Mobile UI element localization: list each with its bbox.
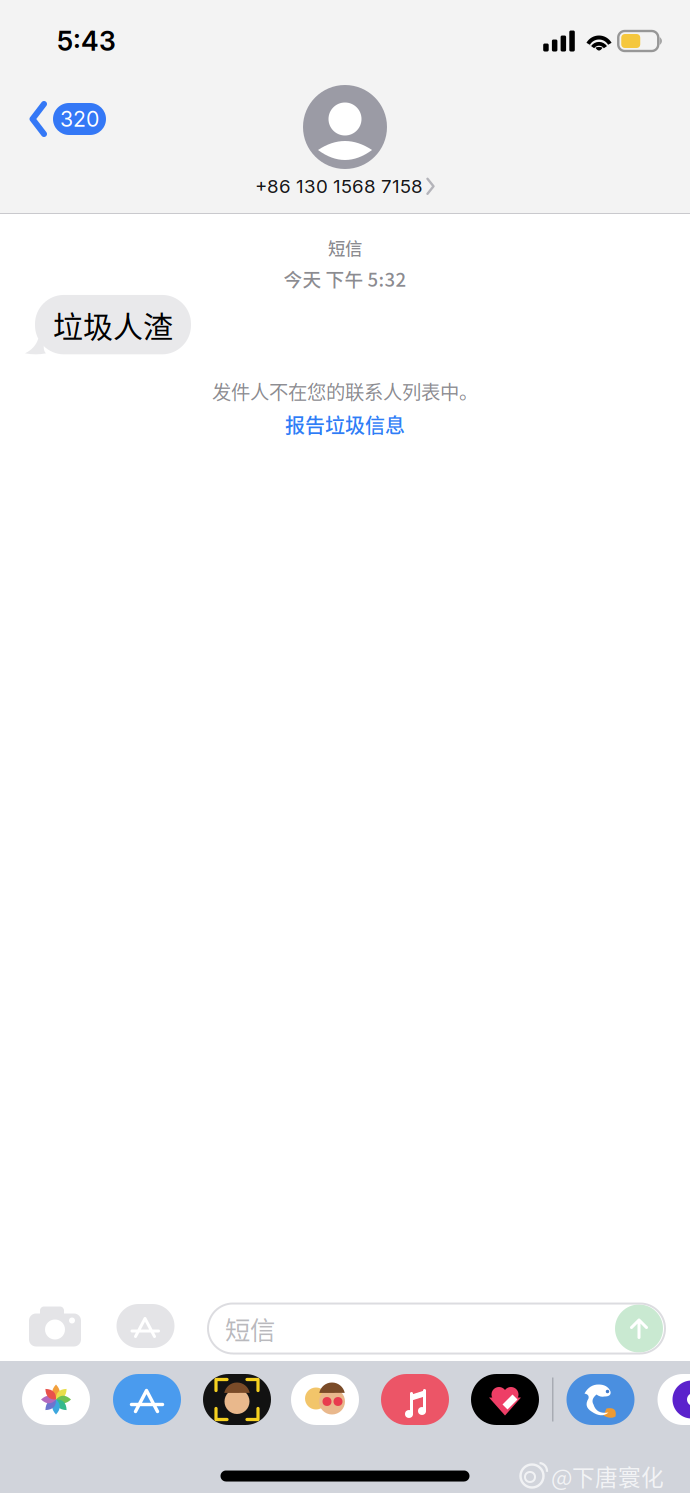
staticText: 报告垃圾信息 (285, 410, 405, 439)
staticText: 短信 (328, 235, 362, 260)
button[interactable]: Memoji (203, 1374, 271, 1425)
button[interactable]: Dolphin app (566, 1374, 634, 1425)
staticText: 今天 下午 5:32 (283, 265, 406, 292)
button[interactable]: 320 (29, 101, 106, 137)
button[interactable]: App Store (119, 1304, 172, 1348)
button[interactable]: Camera (29, 1303, 81, 1343)
staticText: +86 130 1568 7158 (255, 175, 423, 198)
button[interactable]: +86 130 1568 7158 (255, 175, 435, 198)
staticText: @下唐寰化 (551, 1460, 664, 1492)
button[interactable]: Digital Touch (471, 1374, 539, 1425)
staticText: 320 (60, 106, 99, 132)
button[interactable]: Music (381, 1374, 449, 1425)
button[interactable]: App Store (113, 1374, 181, 1425)
button[interactable]: Memoji Stickers (291, 1374, 359, 1425)
staticText: 5:43 (57, 25, 116, 57)
button[interactable]: More apps (657, 1374, 690, 1425)
button[interactable]: 报告垃圾信息 (285, 410, 405, 439)
button[interactable]: Photos (22, 1374, 90, 1425)
staticText: 短信 (225, 1310, 275, 1347)
staticText: 垃圾人渣 (53, 303, 173, 346)
staticText: 发件人不在您的联系人列表中。 (212, 377, 478, 405)
